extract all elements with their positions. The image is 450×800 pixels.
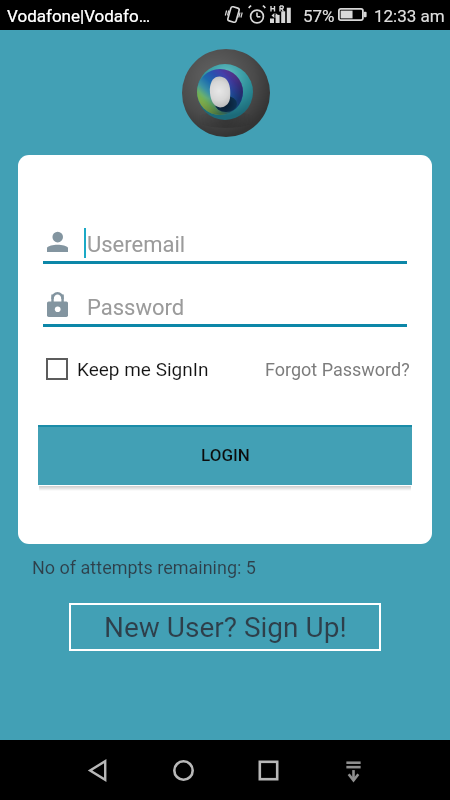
- staticText: Useremail: [87, 232, 186, 258]
- button[interactable]: Forgot Password?: [248, 358, 410, 380]
- staticText: 12:33 am: [374, 6, 445, 26]
- staticText: Forgot Password?: [265, 359, 410, 380]
- button[interactable]: New User? Sign Up!: [69, 603, 381, 651]
- button[interactable]: Recents: [246, 748, 290, 792]
- staticText: Keep me SignIn: [77, 358, 209, 380]
- button[interactable]: LOGIN: [38, 425, 412, 485]
- staticText: 57%: [303, 6, 335, 26]
- button[interactable]: Keep me SignIn: [46, 358, 209, 380]
- button[interactable]: Back: [76, 748, 120, 792]
- staticText: New User? Sign Up!: [104, 611, 347, 644]
- staticText: Vodafone|Vodafo…: [7, 6, 151, 26]
- button[interactable]: Home: [161, 748, 205, 792]
- button[interactable]: Hide keyboard: [331, 748, 375, 792]
- staticText: Password: [87, 295, 185, 321]
- staticText: No of attempts remaining: 5: [32, 557, 256, 578]
- staticText: LOGIN: [201, 445, 250, 465]
